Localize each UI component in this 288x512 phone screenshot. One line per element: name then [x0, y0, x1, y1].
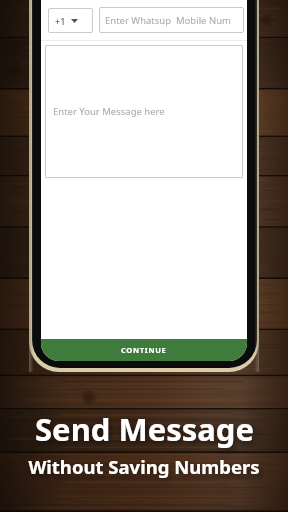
staticText: Enter Whatsup Mobile Num [105, 14, 231, 27]
button[interactable]: CONTINUE [41, 339, 247, 361]
button[interactable]: Enter Your Message here [45, 45, 243, 178]
button[interactable]: +1 [48, 8, 93, 33]
button[interactable]: Enter Whatsup Mobile Num [99, 7, 244, 33]
other: Select country code [71, 19, 78, 23]
staticText: CONTINUE [121, 345, 167, 355]
staticText: Send Message [35, 408, 254, 450]
staticText: Enter Your Message here [53, 105, 165, 118]
staticText: Without Saving Numbers [28, 454, 260, 479]
staticText: +1 [55, 15, 66, 27]
